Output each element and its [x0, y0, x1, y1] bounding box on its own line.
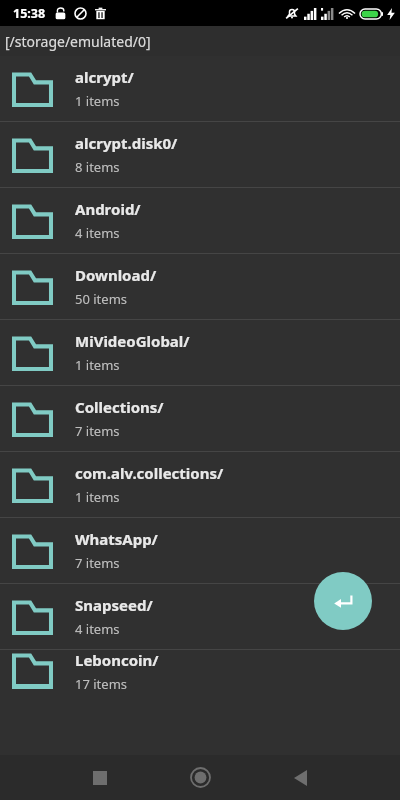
button[interactable]: alcrypt/: [0, 56, 400, 121]
staticText: alcrypt.disk0/: [75, 133, 178, 153]
staticText: 7 items: [75, 554, 120, 572]
staticText: 1 items: [75, 356, 120, 374]
button[interactable]: Snapseed/: [0, 584, 400, 649]
button[interactable]: WhatsApp/: [0, 518, 400, 583]
button[interactable]: Collections/: [0, 386, 400, 451]
staticText: Snapseed/: [75, 595, 153, 615]
button[interactable]: Download/: [0, 254, 400, 319]
button[interactable]: Go up: [314, 572, 372, 630]
button[interactable]: Home: [150, 755, 250, 800]
staticText: [/storage/emulated/0]: [5, 32, 151, 51]
staticText: alcrypt/: [75, 67, 134, 87]
staticText: 8 items: [75, 158, 120, 176]
button[interactable]: alcrypt.disk0/: [0, 122, 400, 187]
staticText: 7 items: [75, 422, 120, 440]
staticText: Download/: [75, 265, 157, 285]
button[interactable]: Android/: [0, 188, 400, 253]
button[interactable]: [/storage/emulated/0]: [0, 26, 400, 56]
button[interactable]: Recents: [50, 755, 150, 800]
staticText: MiVideoGlobal/: [75, 331, 190, 351]
staticText: 1 items: [75, 92, 120, 110]
button[interactable]: com.alv.collections/: [0, 452, 400, 517]
staticText: com.alv.collections/: [75, 463, 224, 483]
button[interactable]: Leboncoin/: [0, 650, 400, 689]
staticText: 17 items: [75, 675, 128, 689]
staticText: 4 items: [75, 224, 120, 242]
staticText: Collections/: [75, 397, 164, 417]
staticText: 4 items: [75, 620, 120, 638]
staticText: 15:38: [13, 5, 46, 22]
staticText: WhatsApp/: [75, 529, 158, 549]
staticText: Leboncoin/: [75, 650, 159, 670]
button[interactable]: Back: [250, 755, 350, 800]
staticText: Android/: [75, 199, 141, 219]
staticText: 1 items: [75, 488, 120, 506]
button[interactable]: MiVideoGlobal/: [0, 320, 400, 385]
staticText: 50 items: [75, 290, 128, 308]
